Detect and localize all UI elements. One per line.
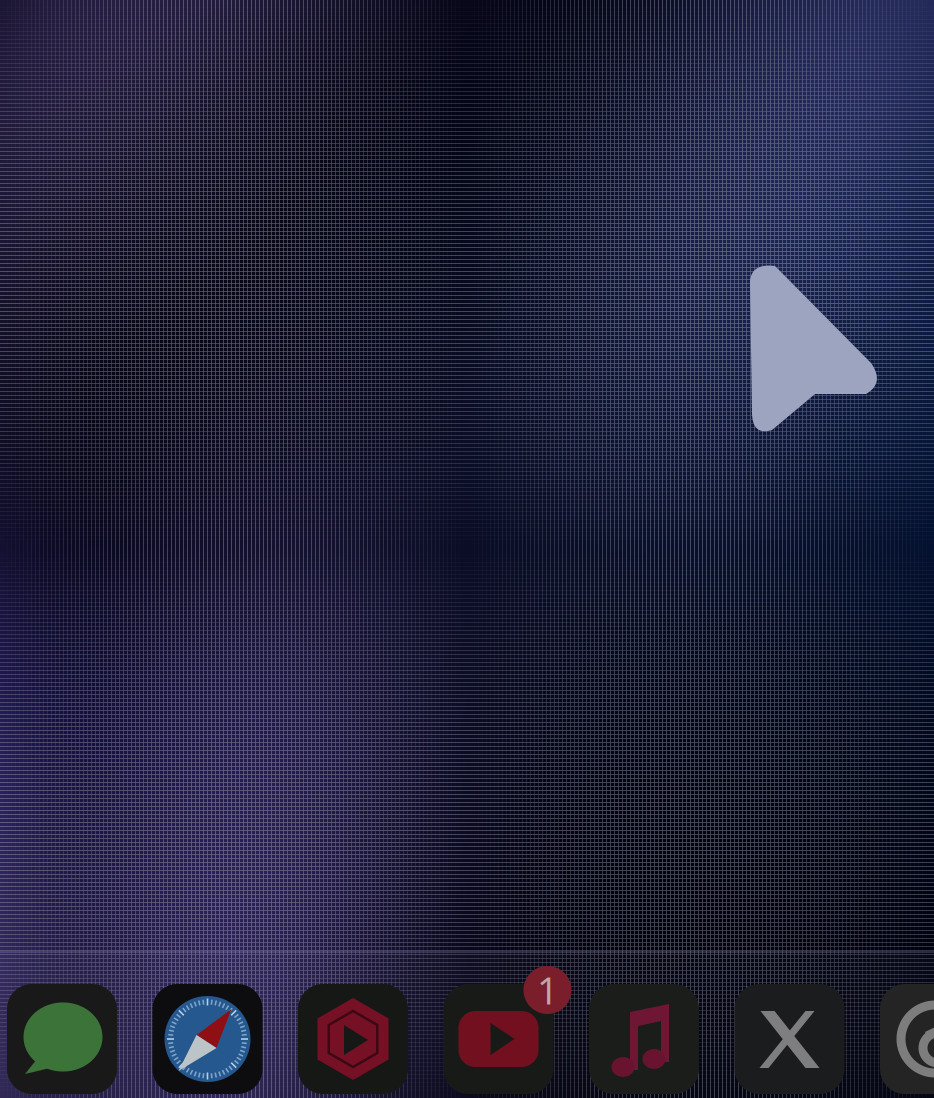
staticText: 1 [537, 965, 558, 1015]
button[interactable]: Music [589, 984, 699, 1094]
button[interactable]: Media Player [298, 984, 408, 1094]
button[interactable]: YouTube, 1 notification [443, 984, 553, 1094]
button[interactable]: Safari [152, 984, 262, 1094]
button[interactable]: Threads [880, 984, 934, 1094]
button[interactable]: Messages [7, 984, 117, 1094]
button[interactable]: X [734, 984, 844, 1094]
